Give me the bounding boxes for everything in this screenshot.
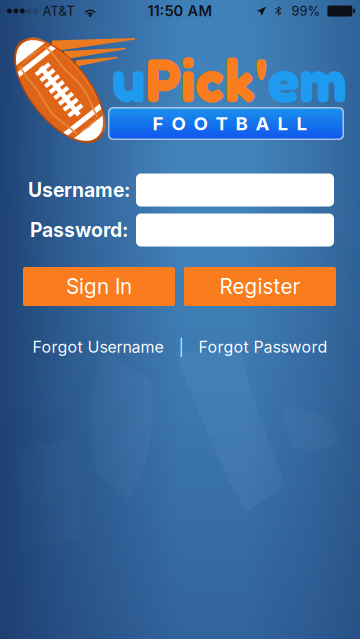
staticText: 11:50 AM	[147, 2, 212, 20]
staticText: AT&T	[43, 3, 75, 19]
button[interactable]: Sign In	[23, 267, 175, 306]
staticText: Pick'	[145, 43, 267, 115]
staticText: Forgot Username	[32, 337, 163, 357]
staticText: |	[163, 337, 198, 357]
staticText: Password:	[30, 218, 128, 242]
staticText: Username:	[28, 178, 130, 202]
staticText: Register	[219, 274, 300, 299]
staticText: u	[111, 43, 145, 115]
staticText: 99%	[291, 3, 320, 19]
button[interactable]: Register	[184, 267, 336, 306]
button[interactable]: Forgot Password	[198, 337, 327, 357]
button[interactable]: Forgot Username	[32, 337, 163, 357]
staticText: Forgot Password	[198, 337, 327, 357]
staticText: Sign In	[66, 274, 132, 299]
staticText: em	[267, 43, 346, 115]
staticText: FOOTBALL	[152, 112, 307, 135]
